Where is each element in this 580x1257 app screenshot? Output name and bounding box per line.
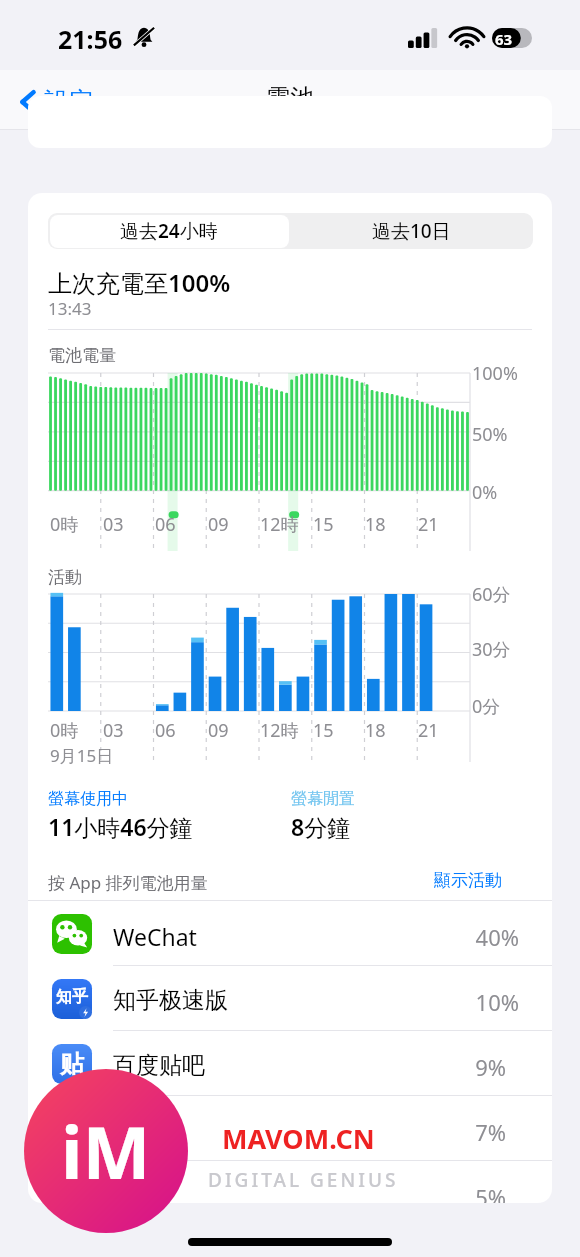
staticText: 上次充電至100% — [48, 266, 231, 299]
button[interactable]: 設定 — [14, 82, 100, 121]
button[interactable]: 過去24小時 — [48, 213, 290, 249]
staticText: 40% — [475, 922, 519, 952]
staticText: 18 — [365, 718, 386, 743]
staticText: 按 App 排列電池用量 — [48, 871, 208, 894]
staticText: 09 — [208, 718, 229, 743]
staticText: 60分 — [472, 582, 511, 607]
staticText: 9月15日 — [50, 744, 114, 767]
staticText: 0時 — [50, 718, 79, 743]
staticText: WeChat — [113, 921, 197, 952]
staticText: 10% — [475, 987, 519, 1017]
button[interactable] — [28, 96, 552, 148]
staticText: 知乎 — [56, 987, 88, 1007]
staticText: 11小時46分鐘 — [48, 811, 193, 842]
staticText: 0% — [472, 480, 498, 505]
staticText: 百度贴吧 — [113, 1051, 205, 1080]
staticText: 螢幕使用中 — [48, 789, 128, 809]
button[interactable]: 贴 — [28, 1031, 552, 1096]
staticText: 活動 — [48, 567, 82, 588]
staticText: 8分鐘 — [291, 811, 351, 842]
staticText: 13:43 — [48, 297, 92, 320]
staticText: 12時 — [260, 718, 299, 743]
staticText: 設定 — [44, 86, 94, 117]
staticText: MAVOM.CN — [222, 1120, 375, 1157]
staticText: 21:56 — [58, 22, 123, 56]
staticText: 50% — [472, 422, 508, 447]
button[interactable]: 過去10日 — [290, 213, 533, 249]
staticText: 06 — [155, 512, 176, 537]
staticText: 螢幕閒置 — [291, 789, 355, 809]
staticText: iM — [61, 1102, 151, 1200]
staticText: 100% — [472, 361, 518, 386]
staticText: 5% — [475, 1182, 506, 1203]
staticText: 63 — [495, 29, 513, 49]
staticText: 0分 — [472, 694, 501, 719]
staticText: 顯示活動 — [434, 870, 502, 891]
staticText: 0時 — [50, 512, 79, 537]
button[interactable]: WeChat — [28, 901, 552, 966]
button[interactable]: 知乎 — [28, 966, 552, 1031]
staticText: 21 — [418, 512, 439, 537]
staticText: 18 — [365, 512, 386, 537]
button[interactable]: 7% — [28, 1096, 552, 1161]
staticText: 15 — [313, 718, 334, 743]
staticText: 30分 — [472, 637, 511, 662]
staticText: 9% — [475, 1052, 506, 1082]
staticText: 15 — [313, 512, 334, 537]
staticText: 03 — [103, 718, 124, 743]
staticText: 12時 — [260, 512, 299, 537]
staticText: 贴 — [60, 1049, 84, 1079]
staticText: 過去10日 — [372, 218, 451, 244]
staticText: 電池電量 — [48, 345, 116, 366]
staticText: 知乎极速版 — [113, 986, 228, 1015]
button[interactable]: 5% — [28, 1161, 552, 1203]
staticText: DIGITAL GENIUS — [208, 1167, 399, 1193]
staticText: 7% — [475, 1117, 506, 1147]
button[interactable]: 顯示活動 — [428, 865, 508, 896]
staticText: 06 — [155, 718, 176, 743]
staticText: 09 — [208, 512, 229, 537]
staticText: 21 — [418, 718, 439, 743]
staticText: 過去24小時 — [120, 218, 218, 244]
staticText: 03 — [103, 512, 124, 537]
staticText: 電池 — [266, 83, 314, 113]
